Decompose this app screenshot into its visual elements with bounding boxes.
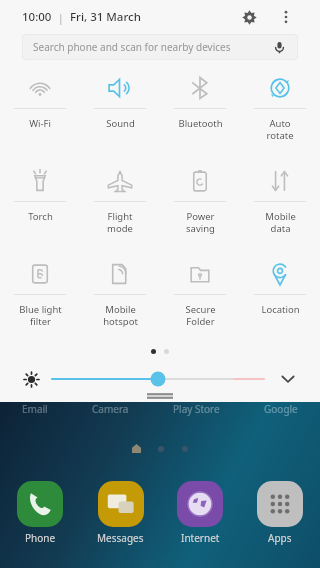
staticText: Internet (181, 531, 220, 545)
button[interactable]: Messages (97, 481, 144, 545)
other: Brightness (20, 368, 42, 390)
staticText: Secure Folder (185, 303, 216, 328)
button[interactable]: Auto rotate (240, 66, 320, 159)
staticText: Sound (106, 117, 135, 130)
staticText: Bluetooth (178, 117, 223, 130)
button[interactable]: Search phone and scan for nearby devices (22, 34, 298, 60)
staticText: 10:00 (22, 9, 52, 25)
staticText: Camera (92, 402, 129, 416)
staticText: Wi-Fi (29, 117, 51, 130)
staticText: Search phone and scan for nearby devices (33, 40, 231, 54)
staticText: Play Store (173, 402, 220, 416)
staticText: Fri, 31 March (70, 9, 141, 25)
staticText: Auto rotate (266, 117, 294, 142)
staticText: Phone (25, 531, 56, 545)
staticText: Apps (268, 531, 292, 545)
button[interactable]: Sound (80, 66, 160, 159)
button[interactable]: Secure Folder (160, 252, 240, 345)
button[interactable]: Phone (17, 481, 63, 545)
button[interactable]: More options (274, 5, 298, 29)
button[interactable]: Mobile hotspot (80, 252, 160, 345)
staticText: Power saving (186, 210, 215, 235)
button[interactable]: Settings (236, 4, 262, 30)
button[interactable]: Location (240, 252, 320, 345)
button[interactable]: Wi-Fi (0, 66, 80, 159)
button[interactable]: Expand brightness settings (276, 367, 300, 391)
staticText: Messages (97, 531, 144, 545)
button[interactable]: Flight mode (80, 159, 160, 252)
button[interactable]: Expand panel (147, 392, 173, 400)
staticText: Mobile hotspot (103, 303, 138, 328)
button[interactable]: Internet (177, 481, 223, 545)
staticText: | (52, 10, 70, 25)
button[interactable]: Torch (0, 159, 80, 252)
staticText: Google (264, 402, 298, 416)
staticText: Flight mode (107, 210, 133, 235)
button[interactable]: Blue light filter (0, 252, 80, 345)
staticText: Mobile data (265, 210, 296, 235)
staticText: Torch (28, 210, 53, 223)
other: Voice search (270, 38, 288, 56)
staticText: Location (261, 303, 300, 316)
button[interactable]: Bluetooth (160, 66, 240, 159)
staticText: Email (22, 402, 48, 416)
button[interactable]: Power saving (160, 159, 240, 252)
button[interactable]: Apps (257, 481, 303, 545)
button[interactable] (52, 366, 264, 392)
staticText: Blue light filter (19, 303, 62, 328)
button[interactable]: Mobile data (240, 159, 320, 252)
